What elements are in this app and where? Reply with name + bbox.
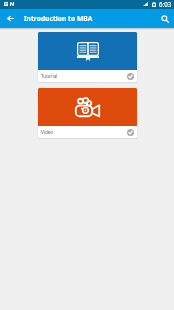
button[interactable]: Tutorial: [38, 32, 137, 82]
staticText: Introduction to MBA: [24, 14, 93, 23]
button[interactable]: Back: [0, 9, 21, 28]
button[interactable]: Video: [38, 88, 137, 138]
staticText: Video: [41, 129, 54, 135]
staticText: 6:03: [159, 0, 172, 8]
staticText: Tutorial: [41, 73, 58, 79]
button[interactable]: Search: [155, 9, 174, 28]
